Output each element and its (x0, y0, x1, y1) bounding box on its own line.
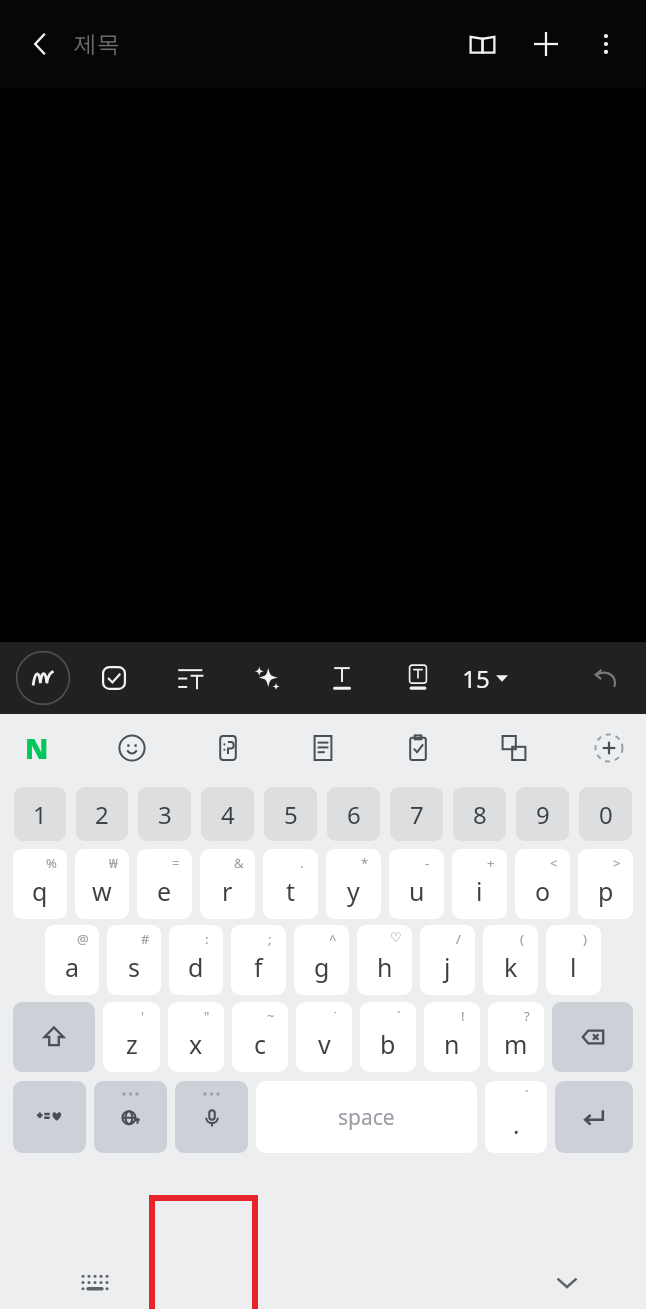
button[interactable]: 8 (453, 787, 506, 841)
staticText: ) (583, 930, 587, 948)
button[interactable]: ! (424, 1002, 480, 1072)
staticText: o (535, 874, 551, 908)
staticText: N (25, 729, 49, 767)
button[interactable]: Handwriting (14, 649, 72, 707)
button[interactable]: 6 (327, 787, 380, 841)
button[interactable]: Translate (487, 721, 541, 775)
button[interactable]: ( (483, 925, 538, 995)
staticText: 제목 (74, 30, 120, 59)
button[interactable]: " (168, 1002, 224, 1072)
button[interactable]: Highlight (390, 650, 446, 706)
staticText: 2 (95, 798, 109, 831)
staticText: y (347, 874, 360, 908)
staticText: ? (524, 1007, 530, 1025)
button[interactable]: Naver (10, 721, 64, 775)
button[interactable]: Emoticons (201, 721, 255, 775)
button[interactable]: > (578, 849, 633, 919)
staticText: & (234, 854, 244, 872)
button[interactable]: @ (45, 925, 99, 995)
staticText: p (598, 874, 614, 908)
button[interactable]: : (169, 925, 223, 995)
staticText: ´ (397, 1007, 401, 1025)
button[interactable]: ´ (360, 1002, 416, 1072)
button[interactable]: Voice input (175, 1081, 248, 1153)
button[interactable]: ♡ (357, 925, 412, 995)
button[interactable]: Add (520, 18, 572, 70)
staticText: m (504, 1027, 528, 1061)
button[interactable]: ? (488, 1002, 544, 1072)
button[interactable]: Symbols (13, 1081, 86, 1153)
staticText: 15 (462, 662, 490, 695)
button[interactable]: 5 (264, 787, 317, 841)
staticText: q (32, 874, 48, 908)
button[interactable]: 4 (201, 787, 254, 841)
button[interactable]: 7 (390, 787, 443, 841)
button[interactable]: Change language (94, 1081, 167, 1153)
staticText: ~ (267, 1007, 275, 1025)
button[interactable]: Space (256, 1081, 477, 1153)
button[interactable]: ~ (232, 1002, 288, 1072)
staticText: w (92, 874, 112, 908)
button[interactable]: = (137, 849, 192, 919)
staticText: i (476, 874, 483, 908)
button[interactable]: Undo (578, 650, 634, 706)
staticText: d (188, 950, 204, 984)
button[interactable]: Text clips (296, 721, 350, 775)
button[interactable]: Backspace (552, 1002, 633, 1072)
button[interactable]: 2 (76, 787, 128, 841)
staticText: f (254, 950, 263, 984)
button[interactable]: ₩ (75, 849, 129, 919)
staticText: space (338, 1103, 395, 1132)
button[interactable]: / (420, 925, 475, 995)
button[interactable]: Add keyboard tool (582, 721, 636, 775)
button[interactable]: Hide keyboard (544, 1259, 590, 1305)
button[interactable]: Paragraph style (162, 650, 218, 706)
button[interactable]: 15 (456, 654, 514, 703)
staticText: h (377, 950, 393, 984)
button[interactable]: * (326, 849, 381, 919)
staticText: c (254, 1027, 267, 1061)
button[interactable]: Keyboard settings (72, 1259, 118, 1305)
staticText: ! (461, 1007, 465, 1025)
button[interactable]: % (13, 849, 67, 919)
button[interactable]: & (200, 849, 255, 919)
staticText: . (300, 854, 304, 872)
button[interactable]: + (452, 849, 507, 919)
button[interactable]: Reading mode (456, 18, 508, 70)
button[interactable]: Clipboard (391, 721, 445, 775)
button[interactable]: - (389, 849, 444, 919)
staticText: @ (77, 930, 89, 948)
staticText: ; (268, 930, 272, 948)
button[interactable]: Back (14, 18, 66, 70)
button[interactable]: Text color (314, 650, 370, 706)
button[interactable]: Emoji (105, 721, 159, 775)
button[interactable]: Shift (13, 1002, 95, 1072)
staticText: t (286, 874, 296, 908)
button[interactable]: ; (231, 925, 286, 995)
staticText: 9 (536, 798, 550, 831)
button[interactable]: ´ (485, 1081, 547, 1153)
button[interactable]: . (263, 849, 318, 919)
button[interactable]: ^ (294, 925, 349, 995)
button[interactable]: 9 (516, 787, 569, 841)
button[interactable]: # (107, 925, 161, 995)
button[interactable]: ' (103, 1002, 160, 1072)
button[interactable]: ) (546, 925, 601, 995)
button[interactable]: AI assist (238, 650, 294, 706)
button[interactable]: < (515, 849, 570, 919)
staticText: v (318, 1027, 331, 1061)
staticText: 6 (347, 798, 361, 831)
button[interactable]: Checklist (86, 650, 142, 706)
button[interactable]: 1 (14, 787, 66, 841)
staticText: 3 (158, 798, 172, 831)
button[interactable]: 3 (138, 787, 191, 841)
button[interactable]: 0 (579, 787, 632, 841)
button[interactable]: ˙ (296, 1002, 352, 1072)
staticText: r (222, 874, 233, 908)
staticText: + (487, 854, 495, 872)
button[interactable]: Enter (555, 1081, 633, 1153)
button[interactable]: More options (580, 18, 632, 70)
staticText: 8 (473, 798, 487, 831)
staticText: a (65, 950, 80, 984)
